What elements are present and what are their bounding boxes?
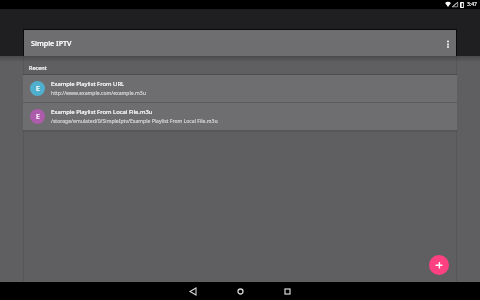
staticText: Example Playlist From Local File.m3u <box>51 108 153 116</box>
button[interactable]: Back <box>181 282 205 300</box>
staticText: http://www.example.com/example.m3u <box>51 90 146 97</box>
button[interactable]: E <box>23 75 457 102</box>
button[interactable]: Add playlist <box>429 255 449 275</box>
button[interactable]: Home <box>228 282 252 300</box>
button[interactable]: More options <box>440 36 456 52</box>
staticText: /storage/emulated/0/SimpleIptv/Example P… <box>51 118 218 125</box>
button[interactable]: E <box>23 103 457 130</box>
staticText: E <box>36 84 40 94</box>
staticText: Recent <box>29 64 47 71</box>
staticText: 3:47 <box>467 1 477 8</box>
staticText: Simple IPTV <box>31 38 72 48</box>
staticText: Example Playlist From URL <box>51 80 125 88</box>
button[interactable]: Simple IPTV <box>24 30 456 56</box>
button[interactable]: Recents <box>275 282 299 300</box>
staticText: E <box>36 112 40 122</box>
